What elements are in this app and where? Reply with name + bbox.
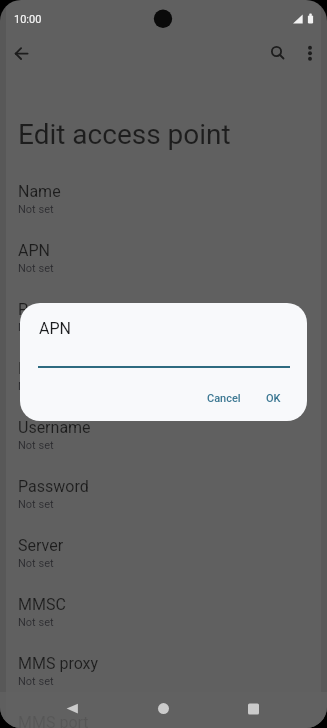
button[interactable]: Port: [0, 353, 327, 412]
staticText: Not set: [18, 616, 54, 629]
button[interactable]: Server: [0, 530, 327, 589]
staticText: 10:00: [14, 13, 42, 26]
button[interactable]: Search: [262, 36, 292, 66]
staticText: Proxy: [18, 300, 58, 319]
staticText: Port: [18, 359, 49, 378]
staticText: OK: [266, 392, 281, 405]
button[interactable]: OK: [256, 385, 291, 411]
staticText: Not set: [18, 675, 54, 688]
staticText: MMS proxy: [18, 654, 99, 673]
staticText: Password: [18, 477, 89, 496]
staticText: Server: [18, 536, 64, 555]
button[interactable]: APN: [0, 235, 327, 294]
staticText: Username: [18, 418, 91, 437]
button[interactable]: Name: [0, 176, 327, 235]
button[interactable]: MMS port: [0, 707, 327, 728]
staticText: Not set: [18, 380, 54, 393]
button[interactable]: Username: [0, 412, 327, 471]
button[interactable]: More options: [297, 36, 324, 63]
staticText: Edit access point: [18, 118, 231, 151]
staticText: Not set: [18, 498, 54, 511]
staticText: Not set: [18, 439, 54, 452]
staticText: APN: [39, 319, 71, 338]
staticText: Not set: [18, 557, 54, 570]
button[interactable]: Back: [5, 36, 41, 72]
staticText: Not set: [18, 203, 54, 216]
staticText: Cancel: [207, 392, 241, 405]
button[interactable]: Cancel: [197, 385, 251, 411]
staticText: APN: [18, 241, 50, 260]
staticText: Not set: [18, 262, 54, 275]
button[interactable]: Password: [0, 471, 327, 530]
button[interactable]: MMS proxy: [0, 648, 327, 707]
staticText: MMS port: [18, 713, 89, 728]
staticText: MMSC: [18, 595, 66, 614]
button[interactable]: MMSC: [0, 589, 327, 648]
staticText: Name: [18, 182, 61, 201]
button[interactable]: Proxy: [0, 294, 327, 353]
staticText: Not set: [18, 321, 54, 334]
